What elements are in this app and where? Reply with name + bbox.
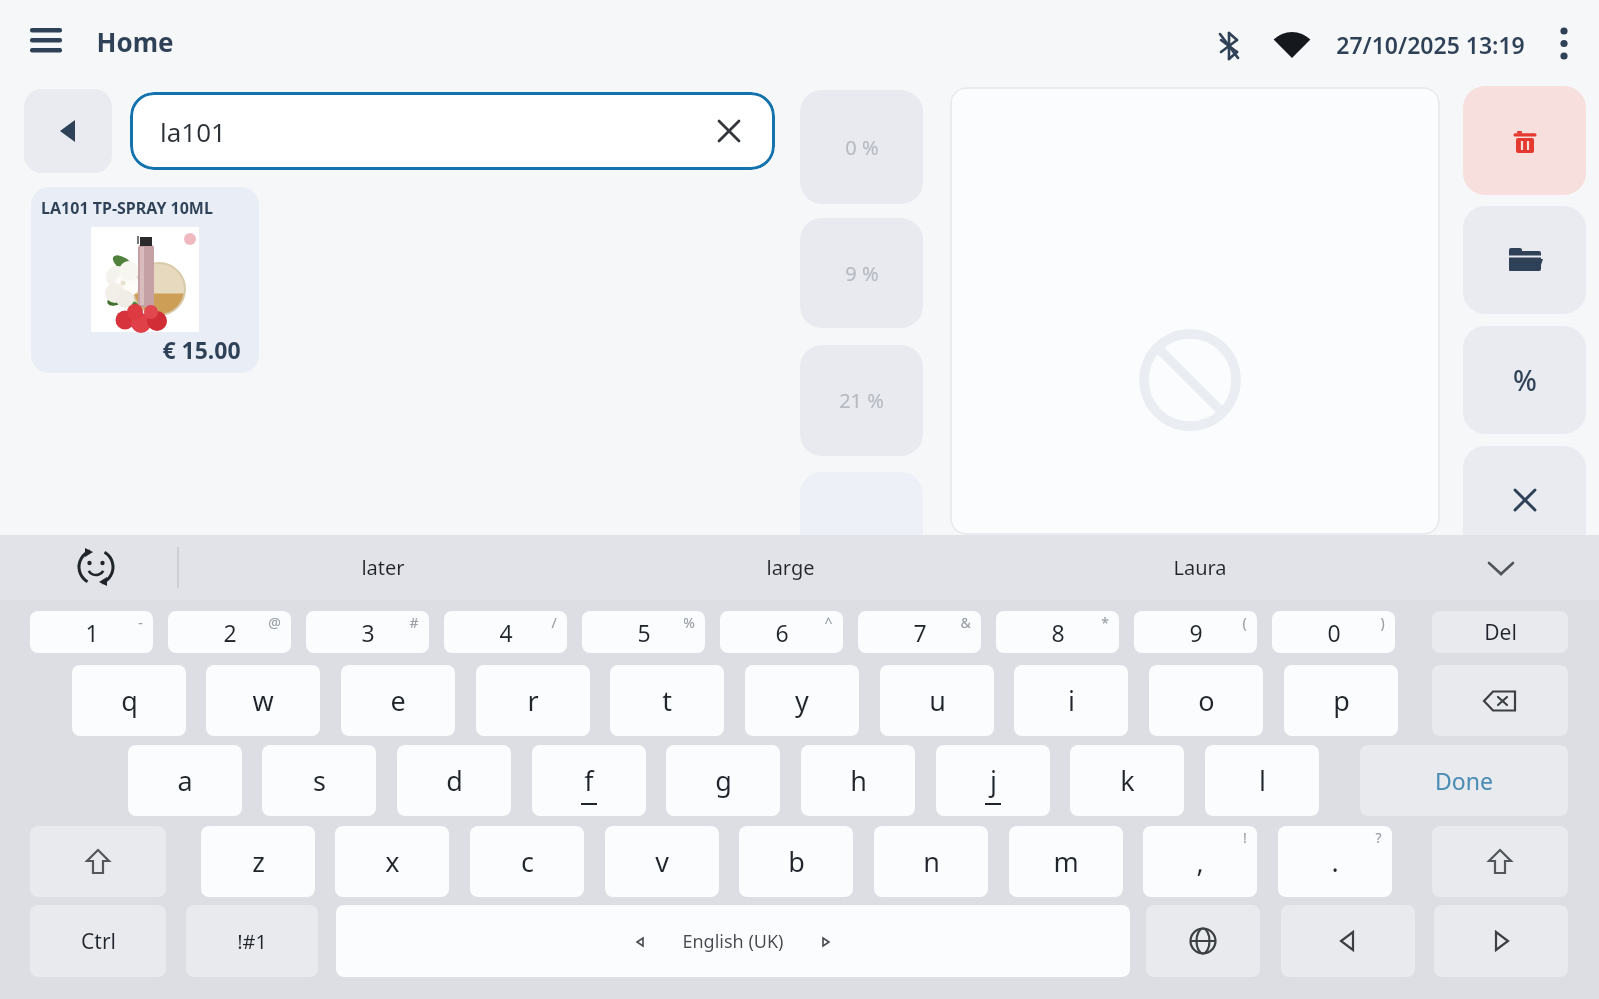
staticText: p — [1333, 682, 1350, 719]
button[interactable] — [1463, 446, 1586, 554]
button[interactable]: 9 % — [800, 218, 923, 328]
staticText: , — [1196, 843, 1204, 880]
staticText: ( — [1242, 613, 1247, 632]
button[interactable] — [1281, 905, 1415, 977]
button[interactable]: 6 — [720, 611, 843, 653]
button[interactable]: j — [936, 745, 1050, 816]
button[interactable]: large — [690, 535, 890, 600]
button[interactable]: 5 — [582, 611, 705, 653]
button[interactable]: v — [605, 826, 719, 897]
button[interactable]: e — [341, 665, 455, 736]
button[interactable]: f — [532, 745, 646, 816]
staticText: English (UK) — [682, 929, 784, 954]
button[interactable] — [1432, 665, 1568, 736]
staticText: k — [1120, 762, 1135, 799]
button[interactable]: 0 — [1272, 611, 1395, 653]
button[interactable]: z — [201, 826, 315, 897]
button[interactable]: English (UK) — [336, 905, 1130, 977]
button[interactable]: a — [128, 745, 242, 816]
button[interactable]: k — [1070, 745, 1184, 816]
button[interactable]: Done — [1360, 745, 1568, 816]
staticText: * — [1101, 613, 1109, 632]
button[interactable]: c — [470, 826, 584, 897]
staticText: g — [715, 762, 732, 799]
button[interactable]: 8 — [996, 611, 1119, 653]
button[interactable] — [30, 826, 166, 897]
button[interactable] — [1434, 905, 1568, 977]
button[interactable]: d — [397, 745, 511, 816]
staticText: n — [923, 843, 940, 880]
staticText: la101 — [160, 114, 226, 149]
button[interactable] — [24, 89, 112, 173]
button[interactable]: i — [1014, 665, 1128, 736]
staticText: d — [446, 762, 463, 799]
staticText: e — [390, 682, 406, 719]
button[interactable]: u — [880, 665, 994, 736]
button[interactable] — [1146, 905, 1260, 977]
staticText: l — [1259, 762, 1266, 799]
button[interactable]: m — [1009, 826, 1123, 897]
button[interactable]: Ctrl — [30, 905, 166, 977]
button[interactable]: !#1 — [186, 905, 318, 977]
button[interactable]: 7 — [858, 611, 981, 653]
button[interactable]: r — [476, 665, 590, 736]
button[interactable]: 3 — [306, 611, 429, 653]
button[interactable]: p — [1284, 665, 1398, 736]
button[interactable] — [1432, 826, 1568, 897]
button[interactable] — [28, 24, 64, 56]
button[interactable]: t — [610, 665, 724, 736]
button[interactable]: 2 — [168, 611, 291, 653]
staticText: v — [655, 843, 669, 880]
staticText: c — [521, 843, 534, 880]
button[interactable]: o — [1149, 665, 1263, 736]
button[interactable]: , — [1143, 826, 1257, 897]
button[interactable]: Del — [1432, 611, 1568, 653]
button[interactable]: 0 % — [800, 90, 923, 204]
staticText: f — [584, 762, 594, 799]
button[interactable]: % — [1463, 326, 1586, 434]
button[interactable]: 4 — [444, 611, 567, 653]
button[interactable]: 21 % — [800, 345, 923, 456]
staticText: 5 — [637, 617, 651, 648]
button[interactable]: later — [283, 535, 483, 600]
button[interactable]: w — [206, 665, 320, 736]
button[interactable] — [1463, 206, 1586, 314]
staticText: & — [960, 613, 971, 632]
staticText: 7 — [913, 617, 927, 648]
staticText: % — [1513, 361, 1537, 399]
button[interactable] — [1548, 22, 1580, 66]
staticText: Del — [1484, 618, 1517, 647]
button[interactable]: 1 — [30, 611, 153, 653]
button[interactable]: la101 — [130, 92, 775, 170]
button[interactable]: q — [72, 665, 186, 736]
button[interactable]: b — [739, 826, 853, 897]
button[interactable]: Laura — [1100, 535, 1300, 600]
staticText: h — [850, 762, 867, 799]
button[interactable]: x — [335, 826, 449, 897]
staticText: ) — [1380, 613, 1385, 632]
button[interactable] — [800, 472, 923, 582]
button[interactable]: . — [1278, 826, 1392, 897]
button[interactable]: y — [745, 665, 859, 736]
button[interactable]: s — [262, 745, 376, 816]
staticText: 27/10/2025 13:19 — [1336, 29, 1525, 60]
button[interactable]: 9 — [1134, 611, 1257, 653]
staticText: 9 — [1189, 617, 1203, 648]
staticText: 8 — [1051, 617, 1065, 648]
staticText: 6 — [775, 617, 789, 648]
button[interactable]: l — [1205, 745, 1319, 816]
staticText: u — [929, 682, 946, 719]
button[interactable] — [1463, 86, 1586, 195]
button[interactable] — [66, 537, 126, 597]
button[interactable] — [1470, 535, 1532, 600]
staticText: r — [527, 682, 539, 719]
staticText: z — [252, 843, 265, 880]
staticText: Ctrl — [81, 927, 116, 956]
button[interactable]: n — [874, 826, 988, 897]
staticText: large — [766, 554, 815, 581]
staticText: 3 — [361, 617, 375, 648]
button[interactable]: LA101 TP-SPRAY 10ML — [31, 187, 259, 373]
button[interactable]: g — [666, 745, 780, 816]
button[interactable]: h — [801, 745, 915, 816]
staticText: 0 % — [845, 134, 879, 161]
